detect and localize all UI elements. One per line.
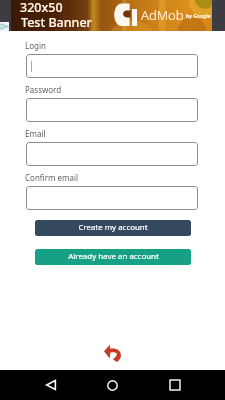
staticText: Create my account (78, 222, 148, 233)
staticText: Confirm email (25, 172, 79, 183)
staticText: AdMob (141, 6, 184, 24)
button[interactable] (26, 142, 198, 166)
button[interactable] (26, 54, 198, 78)
button[interactable]: Recents (156, 370, 193, 400)
button[interactable]: Home (94, 370, 131, 400)
staticText: by Google (186, 13, 211, 20)
button[interactable]: Ad choices (0, 22, 9, 31)
staticText: Email (25, 128, 46, 139)
staticText: Already have an account (68, 251, 159, 262)
staticText: Password (25, 84, 62, 95)
button[interactable]: Advertisement (11, 0, 212, 31)
button[interactable]: Already have an account (35, 249, 191, 265)
button[interactable]: Create my account (35, 220, 191, 236)
button[interactable] (26, 98, 198, 122)
staticText: Login (25, 40, 46, 51)
button[interactable]: Back (32, 370, 69, 400)
button[interactable]: Undo (104, 344, 123, 362)
staticText: Test Banner (21, 14, 92, 31)
staticText: 320x50 (20, 0, 63, 16)
button[interactable] (26, 186, 198, 210)
